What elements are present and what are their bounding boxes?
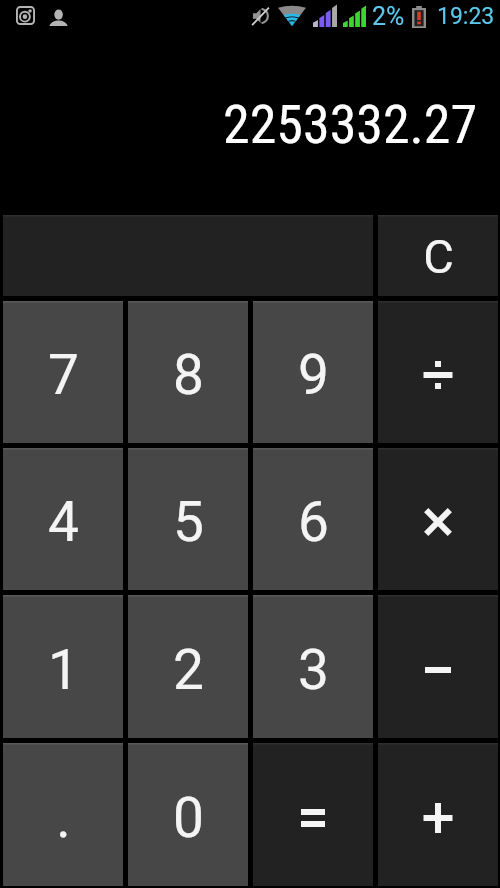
staticText: 2% [372, 2, 405, 31]
staticText: 4 [48, 490, 79, 554]
other: Camera [16, 6, 35, 25]
other: Account [49, 9, 68, 26]
staticText: 0 [173, 786, 204, 850]
button[interactable]: 7 [0, 298, 125, 445]
staticText: 5 [173, 490, 204, 554]
staticText: 9 [298, 343, 329, 407]
button[interactable]: Divide [375, 298, 500, 445]
button[interactable]: Subtract [375, 592, 500, 740]
button[interactable]: 9 [250, 298, 375, 445]
button[interactable]: 6 [250, 445, 375, 592]
button[interactable]: Add [375, 740, 500, 888]
button[interactable]: 0 [125, 740, 250, 888]
button[interactable]: 5 [125, 445, 250, 592]
button[interactable]: 2 [125, 592, 250, 740]
button[interactable]: C [375, 212, 500, 298]
button[interactable]: 3 [250, 592, 375, 740]
staticText: 2 [173, 638, 204, 702]
button[interactable]: 4 [0, 445, 125, 592]
button[interactable]: 1 [0, 592, 125, 740]
staticText: 1 [48, 638, 79, 702]
staticText: 2253332.27 [223, 93, 478, 156]
staticText: 6 [298, 490, 329, 554]
staticText: 7 [48, 343, 79, 407]
staticText: 3 [298, 638, 329, 702]
button[interactable]: 8 [125, 298, 250, 445]
staticText: 8 [173, 343, 204, 407]
staticText: . [56, 786, 71, 850]
button[interactable] [0, 212, 375, 298]
button[interactable]: Multiply [375, 445, 500, 592]
staticText: C [423, 229, 454, 284]
button[interactable]: Equals [250, 740, 375, 888]
button[interactable]: . [0, 740, 125, 888]
staticText: 19:23 [437, 3, 495, 30]
